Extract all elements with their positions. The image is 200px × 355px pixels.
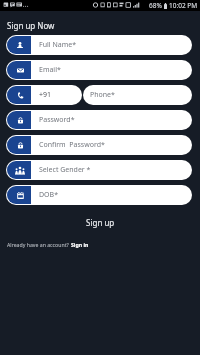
staticText: Select Gender * <box>39 165 91 175</box>
button[interactable]: Person <box>6 35 192 55</box>
other: Person <box>7 36 31 54</box>
button[interactable]: Password <box>6 110 192 130</box>
button[interactable]: Gender <box>6 160 192 180</box>
staticText: Phone* <box>90 90 115 100</box>
staticText: Email* <box>39 65 61 75</box>
staticText: Sign up <box>86 217 115 228</box>
button[interactable]: Sign up <box>0 215 200 229</box>
staticText: Confirm Password* <box>39 140 105 150</box>
other: Email <box>7 61 31 79</box>
other: Date of birth <box>7 186 31 204</box>
staticText: 10:02 PM <box>169 1 198 10</box>
other: Phone <box>7 86 31 104</box>
button[interactable]: Phone* <box>83 85 192 105</box>
staticText: Sign up Now <box>7 20 55 31</box>
button[interactable]: Email <box>6 60 192 80</box>
other: Gender <box>7 161 31 179</box>
button[interactable]: Password <box>6 135 192 155</box>
staticText: Full Name* <box>39 40 76 50</box>
button[interactable]: Sign in <box>71 241 89 248</box>
staticText: Password* <box>39 115 75 125</box>
staticText: +91 <box>39 90 52 100</box>
staticText: 68% <box>149 1 162 10</box>
button[interactable]: Date of birth <box>6 185 192 205</box>
other: Password <box>7 136 31 154</box>
button[interactable]: Phone <box>6 85 82 105</box>
other: Password <box>7 111 31 129</box>
staticText: Already have an account? <box>7 241 71 248</box>
staticText: DOB* <box>39 190 58 200</box>
